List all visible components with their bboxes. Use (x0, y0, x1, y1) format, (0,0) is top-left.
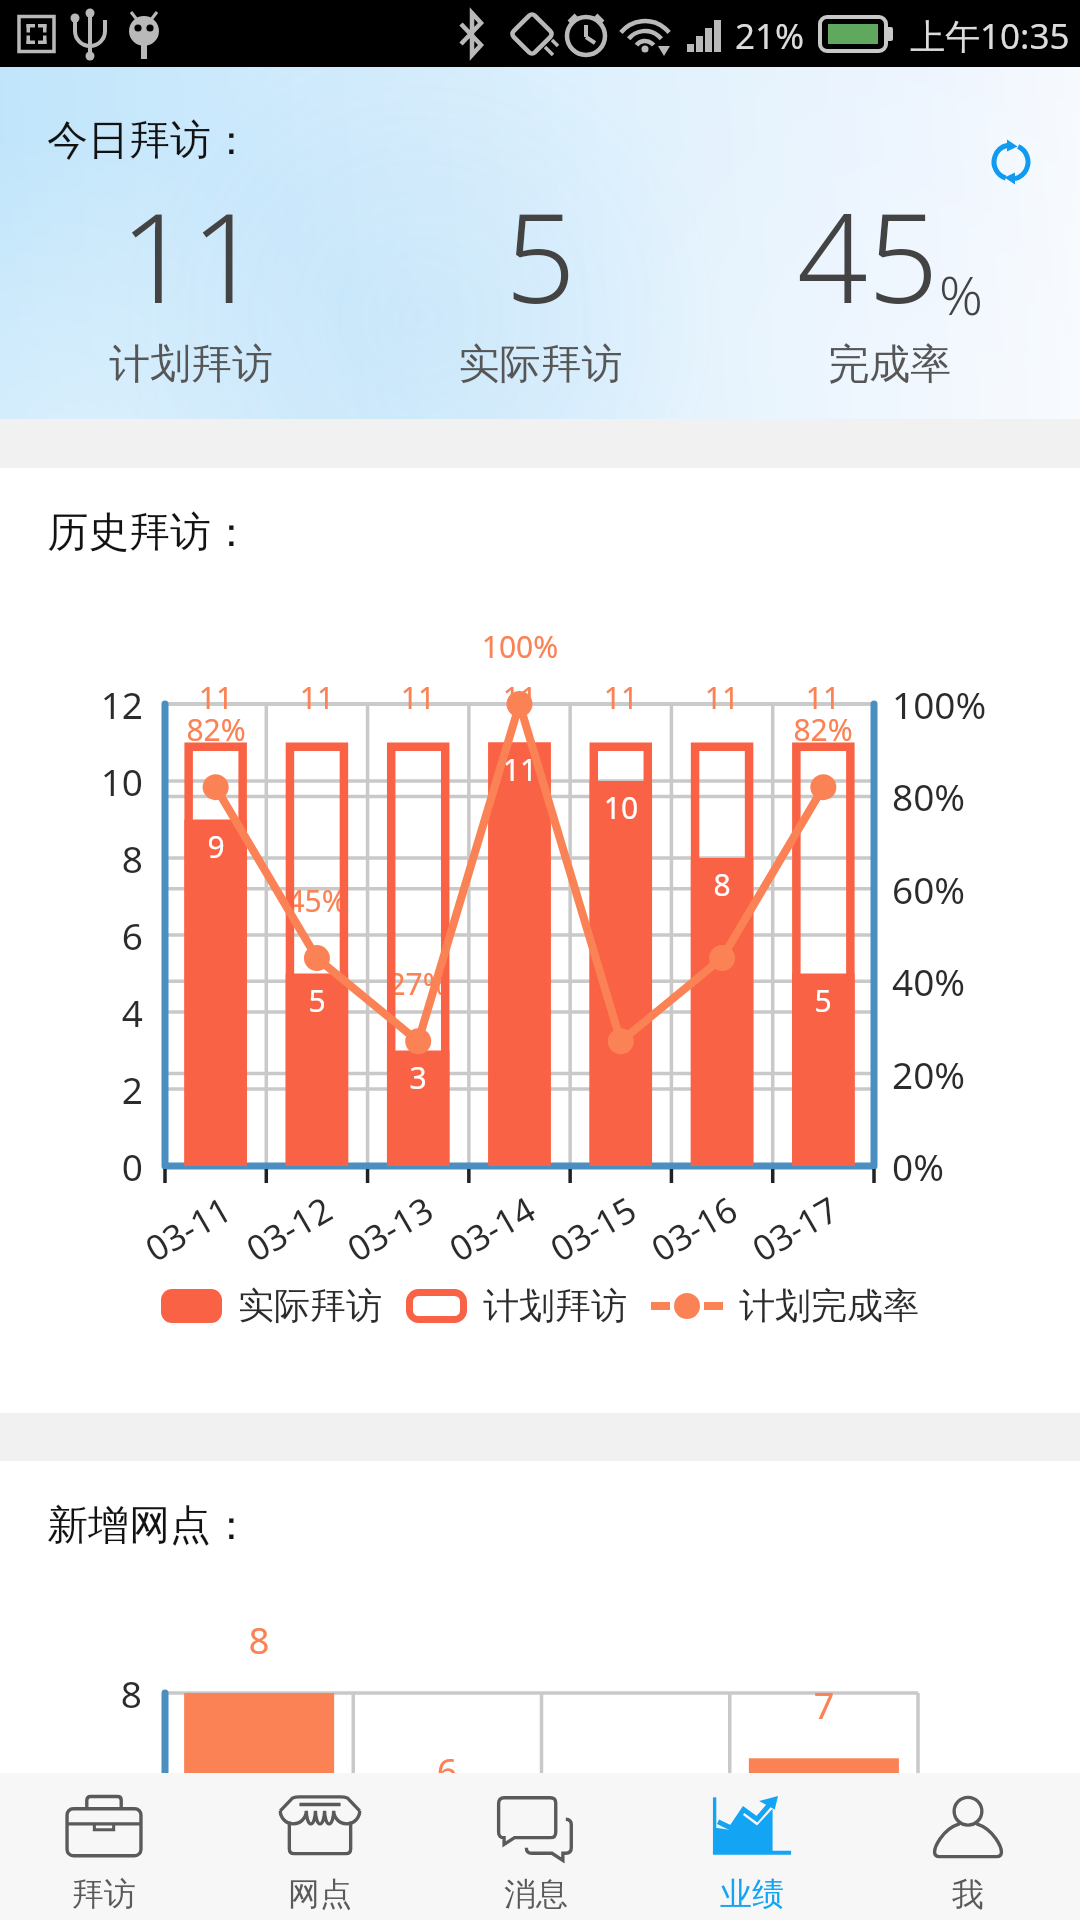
staticText: 8 (0, 1668, 142, 1718)
staticText: 0% (892, 1141, 944, 1191)
staticText: 2 (0, 1064, 143, 1114)
staticText: 计划拜访 (16, 339, 366, 391)
staticText: 11 (227, 677, 407, 718)
staticText: 计划拜访 (483, 1283, 627, 1328)
staticText: 9 (126, 826, 306, 867)
staticText: 5 (227, 980, 407, 1021)
staticText: 45 (797, 170, 939, 339)
button[interactable] (0, 67, 1080, 419)
staticText: 4 (0, 987, 143, 1037)
staticText: 11 (531, 677, 711, 718)
staticText: 03-13 (291, 1158, 489, 1300)
staticText: 82% (126, 709, 306, 750)
staticText: 8 (0, 833, 143, 883)
staticText: 11 (733, 677, 913, 718)
button[interactable]: 我 (860, 1773, 1076, 1920)
staticText: 7 (734, 1681, 914, 1730)
staticText: 拜访 (72, 1874, 136, 1914)
staticText: 80% (892, 771, 966, 821)
staticText: 8 (169, 1616, 349, 1665)
staticText: 03-15 (494, 1158, 692, 1300)
staticText: 实际拜访 (238, 1283, 382, 1328)
staticText: 21% (735, 12, 805, 60)
staticText: 40% (892, 956, 966, 1006)
staticText: 6 (357, 1747, 537, 1796)
staticText: 6 (0, 910, 143, 960)
staticText: 100% (430, 626, 610, 667)
staticText: 03-11 (89, 1158, 287, 1300)
staticText: 5 (733, 980, 913, 1021)
staticText: 03-14 (393, 1158, 591, 1300)
staticText: 5 (505, 170, 576, 339)
staticText: 12 (0, 679, 143, 729)
staticText: 20% (892, 1049, 966, 1099)
staticText: 27% (328, 963, 508, 1004)
staticText: 新增网点： (47, 1500, 252, 1552)
staticText: 45% (227, 880, 407, 921)
staticText: 消息 (504, 1874, 568, 1914)
staticText: 8 (632, 864, 812, 905)
staticText: 11 (328, 677, 508, 718)
staticText: 60% (892, 864, 966, 914)
staticText: 计划完成率 (739, 1283, 919, 1328)
button[interactable]: 网点 (212, 1773, 428, 1920)
staticText: 我 (952, 1874, 984, 1914)
staticText: 历史拜访： (47, 507, 252, 559)
staticText: 03-16 (595, 1158, 793, 1300)
staticText: 82% (733, 709, 913, 750)
staticText: 27% (531, 963, 711, 1004)
staticText: 11 (430, 677, 610, 718)
button[interactable] (0, 1461, 1080, 1773)
staticText: 业绩 (720, 1874, 784, 1914)
staticText: 0 (0, 1141, 143, 1191)
staticText: 03-12 (190, 1158, 388, 1300)
staticText: 100% (892, 679, 987, 729)
button[interactable]: 拜访 (0, 1773, 212, 1920)
staticText: 11 (430, 749, 610, 790)
staticText: 完成率 (715, 339, 1064, 391)
staticText: 10 (0, 756, 143, 806)
staticText: 网点 (288, 1874, 352, 1914)
staticText: 今日拜访： (47, 115, 252, 167)
button[interactable]: 消息 (428, 1773, 644, 1920)
button[interactable] (0, 468, 1080, 1413)
staticText: 实际拜访 (366, 339, 715, 391)
staticText: % (939, 257, 983, 331)
button[interactable]: 业绩 (644, 1773, 860, 1920)
staticText: 3 (328, 1057, 508, 1098)
staticText: 11 (120, 170, 262, 339)
staticText: 45% (632, 880, 812, 921)
staticText: 11 (126, 677, 306, 718)
staticText: 11 (632, 677, 812, 718)
staticText: 03-17 (696, 1158, 894, 1300)
staticText: 10 (531, 787, 711, 828)
button[interactable]: Refresh (985, 136, 1037, 188)
staticText: 上午10:35 (910, 12, 1070, 60)
